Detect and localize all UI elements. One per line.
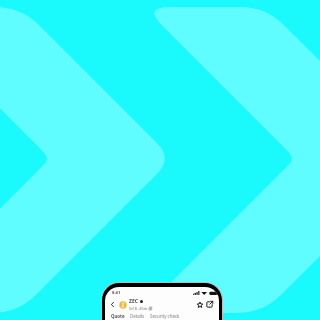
- button[interactable]: Share: [205, 300, 214, 309]
- button[interactable]: Back: [108, 300, 117, 309]
- staticText: 0x1B...85eb: [129, 306, 148, 311]
- staticText: Security check: [150, 313, 180, 319]
- button[interactable]: Favourite: [195, 300, 204, 309]
- staticText: ZEC: [129, 298, 138, 305]
- staticText: Quote: [111, 313, 125, 319]
- staticText: Details: [130, 313, 145, 319]
- button[interactable]: Security check: [150, 311, 180, 320]
- staticText: 8:41: [112, 290, 121, 296]
- button[interactable]: Quote: [111, 311, 125, 320]
- button[interactable]: Details: [130, 311, 145, 320]
